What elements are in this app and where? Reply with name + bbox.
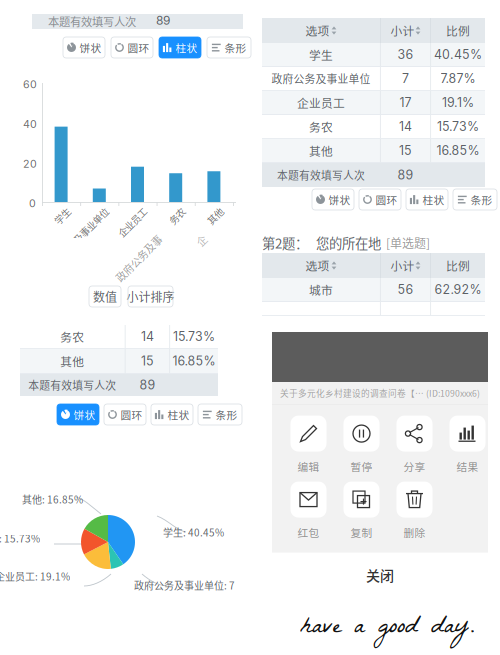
staticText: 圆环 [375, 192, 397, 207]
staticText: 15.73% [437, 119, 479, 134]
staticText: 小计 [390, 257, 414, 274]
button[interactable]: 柱状 [406, 189, 448, 210]
staticText: 您的所在地 [310, 233, 381, 252]
staticText: 结果 [456, 459, 478, 474]
staticText: : 15.73% [0, 531, 40, 545]
staticText: 编辑 [297, 459, 319, 474]
staticText: 圆环 [120, 407, 142, 422]
staticText: 14 [399, 119, 412, 134]
staticText: 企业员工 [297, 94, 345, 111]
button[interactable]: 柱状 [159, 37, 201, 58]
staticText: 第2题： [262, 233, 308, 252]
button[interactable]: 结果 [441, 416, 494, 474]
button[interactable]: 条形 [207, 37, 251, 58]
staticText: 15 [399, 143, 412, 158]
staticText: 红包 [297, 525, 319, 540]
button[interactable]: 数值 [89, 286, 121, 307]
button[interactable]: 圆环 [104, 404, 146, 425]
staticText: 0 [29, 197, 36, 210]
staticText: 条形 [470, 192, 492, 207]
staticText: 柱状 [175, 40, 197, 55]
button[interactable]: 饼状 [57, 404, 99, 425]
staticText: [单选题] [383, 234, 430, 251]
staticText: 学生: 40.45% [163, 525, 224, 539]
staticText: 饼状 [73, 407, 95, 422]
button[interactable]: 分享 [388, 416, 441, 474]
staticText: 62.92% [434, 282, 481, 297]
button[interactable]: 柱状 [151, 404, 193, 425]
staticText: 比例 [446, 22, 470, 39]
staticText: 删除 [403, 525, 425, 540]
staticText: 小计 [390, 22, 414, 39]
staticText: 饼状 [328, 192, 350, 207]
staticText: 政府公务及事业单位 [271, 71, 370, 86]
staticText: 政府公务及事业单位: 7 [134, 578, 235, 592]
staticText: 条形 [224, 40, 246, 55]
staticText: 选项 [305, 257, 329, 274]
staticText: 14 [141, 329, 154, 344]
button[interactable]: 关闭 [272, 553, 488, 597]
button[interactable]: 条形 [453, 189, 497, 210]
staticText: 其他 [309, 142, 333, 159]
staticText: 暂停 [350, 459, 372, 474]
staticText: 15 [141, 354, 154, 369]
staticText: 企 [190, 232, 200, 246]
staticText: 柱状 [422, 192, 444, 207]
staticText: 56 [397, 282, 413, 297]
button[interactable]: 饼状 [63, 37, 105, 58]
staticText: 学生 [309, 46, 333, 63]
staticText: have a good day. [300, 605, 475, 652]
staticText: 16.85% [172, 354, 215, 369]
staticText: 柱状 [167, 407, 189, 422]
staticText: 政府公务及事 [95, 232, 155, 246]
staticText: 15.73% [173, 329, 215, 344]
staticText: 城市 [309, 281, 333, 298]
button[interactable]: 圆环 [111, 37, 153, 58]
button[interactable]: 小计排序 [128, 286, 173, 307]
staticText: 分享 [403, 459, 425, 474]
staticText: 比例 [446, 257, 470, 274]
staticText: 7.87% [440, 71, 475, 86]
staticText: 36 [397, 47, 413, 62]
staticText: 企业员工: 19.1% [0, 569, 70, 583]
staticText: 40.45% [434, 47, 482, 62]
button[interactable]: 圆环 [359, 189, 401, 210]
staticText: 60 [23, 78, 37, 91]
staticText: 务农 [162, 204, 180, 218]
button[interactable]: 条形 [198, 404, 242, 425]
button[interactable]: 复制 [335, 482, 388, 540]
staticText: 小计排序 [126, 288, 174, 305]
staticText: 复制 [350, 525, 372, 540]
staticText: 其他 [200, 204, 218, 218]
staticText: 企业员工 [105, 204, 141, 218]
staticText: 19.1% [442, 95, 474, 110]
staticText: 其他: 16.85% [22, 492, 83, 506]
staticText: 17 [399, 95, 411, 110]
staticText: 7 [402, 71, 409, 86]
staticText: 圆环 [127, 40, 149, 55]
staticText: 饼状 [79, 40, 101, 55]
staticText: 及事业单位 [58, 204, 103, 218]
staticText: 条形 [215, 407, 237, 422]
staticText: 20 [23, 157, 37, 170]
staticText: 本题有效填写人次 [277, 167, 365, 183]
staticText: 其他 [60, 353, 84, 370]
staticText: 本题有效填写人次 [28, 377, 116, 393]
staticText: 89 [156, 13, 170, 27]
staticText: 数值 [93, 288, 117, 305]
staticText: 16.85% [436, 143, 479, 158]
staticText: 务农 [309, 118, 333, 135]
staticText: 关闭 [366, 565, 394, 585]
staticText: 89 [397, 167, 413, 182]
button[interactable]: 红包 [282, 482, 335, 540]
staticText: 本题有效填写人次 [48, 13, 136, 29]
staticText: 选项 [305, 22, 329, 39]
staticText: 关于多元化乡村建设的调查问卷【… (ID:1090xxx6) [280, 387, 480, 399]
button[interactable]: 暂停 [335, 416, 388, 474]
button[interactable]: 编辑 [282, 416, 335, 474]
button[interactable]: 删除 [388, 482, 441, 540]
button[interactable]: 饼状 [312, 189, 354, 210]
staticText: 89 [139, 377, 155, 392]
staticText: 学生 [47, 204, 65, 218]
staticText: 务农 [60, 328, 84, 345]
